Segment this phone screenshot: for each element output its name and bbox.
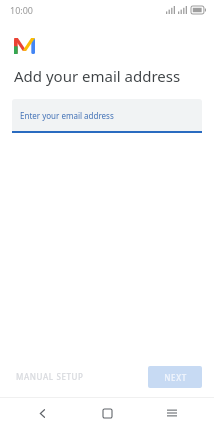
button[interactable]: Back	[19, 398, 65, 428]
button[interactable]: NEXT	[148, 366, 202, 388]
button[interactable]: MANUAL SETUP	[14, 365, 86, 388]
button[interactable]: Enter your email address	[12, 99, 202, 133]
staticText: Enter your email address	[20, 110, 114, 121]
staticText: MANUAL SETUP	[16, 371, 84, 382]
staticText: Add your email address	[14, 66, 181, 86]
staticText: NEXT	[164, 372, 187, 383]
button[interactable]: Recent apps	[149, 398, 195, 428]
staticText: 10:00	[10, 4, 34, 16]
button[interactable]: Home	[84, 398, 130, 428]
